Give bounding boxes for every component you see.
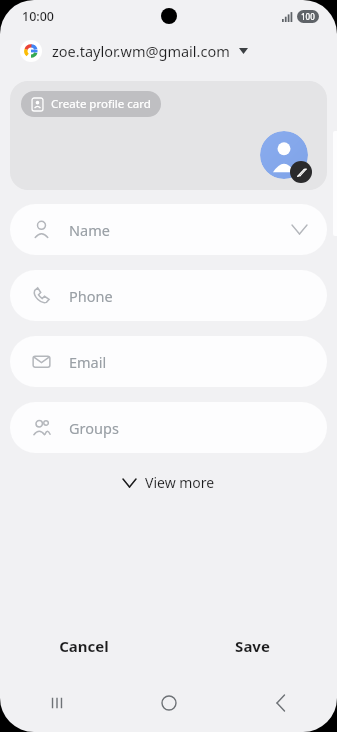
button[interactable]: Cancel xyxy=(0,624,168,668)
staticText: Groups xyxy=(69,418,119,438)
staticText: 100 xyxy=(301,11,315,22)
button[interactable]: Recent apps xyxy=(0,686,113,720)
button[interactable]: zoe.taylor.wm@gmail.com xyxy=(0,32,337,70)
staticText: zoe.taylor.wm@gmail.com xyxy=(52,41,230,61)
staticText: 10:00 xyxy=(22,8,55,25)
staticText: Save xyxy=(235,636,270,656)
button[interactable]: Save xyxy=(168,624,337,668)
button[interactable]: Home xyxy=(113,686,225,720)
button[interactable]: Email xyxy=(10,336,327,387)
button[interactable]: View more xyxy=(109,465,229,500)
staticText: View more xyxy=(145,473,215,492)
staticText: Create profile card xyxy=(51,96,151,112)
button[interactable]: Groups xyxy=(10,402,327,453)
staticText: Email xyxy=(69,352,107,372)
button[interactable]: Back xyxy=(225,686,337,720)
button[interactable]: Name xyxy=(10,204,327,255)
button[interactable]: Profile photo xyxy=(260,131,308,179)
button[interactable]: Phone xyxy=(10,270,327,321)
staticText: Phone xyxy=(69,286,113,306)
staticText: Cancel xyxy=(59,636,109,656)
staticText: Name xyxy=(69,220,110,240)
button[interactable]: Edit photo xyxy=(290,161,312,183)
button[interactable]: Create profile card xyxy=(21,91,161,117)
